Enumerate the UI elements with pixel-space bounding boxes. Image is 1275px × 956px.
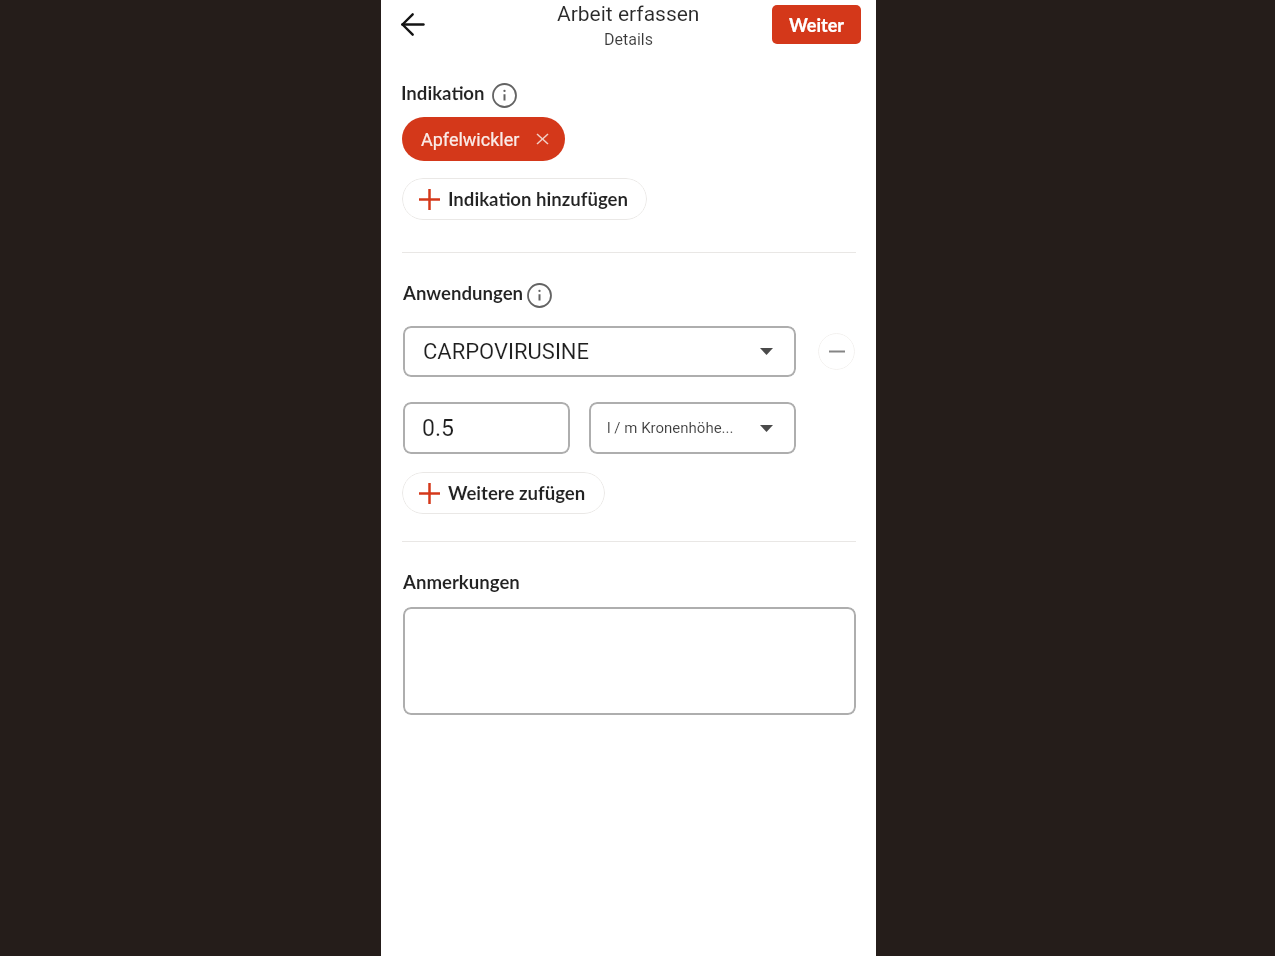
staticText: l / m Kronenhöhe...: [607, 419, 734, 437]
button[interactable]: Remove application: [818, 333, 855, 370]
staticText: Arbeit erfassen: [557, 2, 700, 27]
staticText: Weiter: [789, 14, 844, 36]
staticText: Indikation hinzufügen: [448, 188, 628, 210]
button[interactable]: Indikation hinzufügen: [402, 178, 647, 220]
staticText: 0.5: [422, 415, 454, 442]
staticText: Anwendungen: [403, 282, 524, 304]
button[interactable]: Info Indikation: [491, 82, 517, 108]
staticText: Weitere zufügen: [448, 482, 586, 504]
staticText: Details: [604, 30, 653, 49]
button[interactable]: Back: [381, 2, 425, 46]
staticText: Indikation: [401, 82, 485, 104]
staticText: CARPOVIRUSINE: [423, 339, 590, 365]
button[interactable]: 0.5: [403, 402, 570, 454]
button[interactable]: l / m Kronenhöhe...: [589, 402, 796, 454]
button[interactable]: Weiter: [772, 5, 861, 44]
button[interactable]: CARPOVIRUSINE: [403, 326, 796, 377]
button[interactable]: Apfelwickler: [402, 117, 565, 161]
button[interactable]: Weitere zufügen: [402, 472, 605, 514]
staticText: Apfelwickler: [421, 129, 520, 150]
button[interactable]: Anmerkungen Eingabefeld: [403, 607, 856, 715]
button[interactable]: Info Anwendungen: [526, 282, 552, 308]
staticText: Anmerkungen: [403, 571, 520, 593]
